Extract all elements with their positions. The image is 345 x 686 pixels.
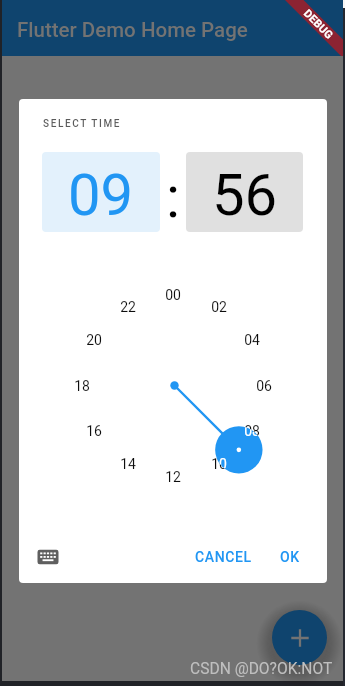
staticText: 18 [74, 378, 90, 394]
button[interactable]: Add [272, 610, 327, 665]
staticText: 04 [244, 332, 260, 348]
staticText: 10 [211, 456, 227, 472]
staticText: DEBUG [301, 7, 336, 42]
staticText: 22 [120, 299, 136, 315]
staticText: 06 [256, 378, 272, 394]
staticText: 56 [212, 161, 278, 229]
staticText: SELECT TIME [43, 118, 122, 130]
staticText: 10 [215, 456, 227, 472]
staticText: 20 [86, 332, 102, 348]
button[interactable]: OK [272, 541, 308, 573]
staticText: 00 [165, 287, 181, 303]
staticText: CANCEL [195, 549, 252, 565]
button[interactable]: 09 [42, 152, 160, 232]
button[interactable]: CANCEL [187, 541, 260, 573]
button[interactable]: Switch to text input mode [30, 539, 66, 575]
staticText: 12 [165, 469, 181, 485]
staticText: CSDN @DO?OK:NOT [190, 660, 333, 678]
staticText: : [166, 163, 181, 231]
staticText: 02 [211, 299, 227, 315]
staticText: Flutter Demo Home Page [17, 18, 248, 42]
staticText: 16 [86, 423, 102, 439]
staticText: 08 [244, 426, 260, 439]
staticText: 08 [244, 423, 260, 439]
staticText: 09 [68, 161, 134, 229]
staticText: OK [280, 549, 300, 565]
staticText: 14 [120, 456, 136, 472]
button[interactable]: 56 [186, 152, 303, 232]
